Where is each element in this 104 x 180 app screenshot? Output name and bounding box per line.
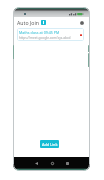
button[interactable]: Settings (79, 20, 84, 25)
button[interactable]: Auto join (41, 20, 46, 25)
button[interactable]: Home (48, 159, 56, 167)
button[interactable]: Delete (79, 33, 83, 37)
staticText: Maths class at 09:45 PM (19, 30, 60, 35)
staticText: Add Link (42, 142, 58, 147)
button[interactable]: Back (32, 159, 40, 167)
button[interactable]: Add Link (40, 140, 59, 148)
staticText: https://meet.google.com/xyz-abcd (19, 36, 71, 40)
button[interactable]: Recents (63, 159, 71, 167)
button[interactable]: Maths class at 09:45 PM (17, 28, 84, 41)
staticText: Auto Join (17, 19, 39, 26)
